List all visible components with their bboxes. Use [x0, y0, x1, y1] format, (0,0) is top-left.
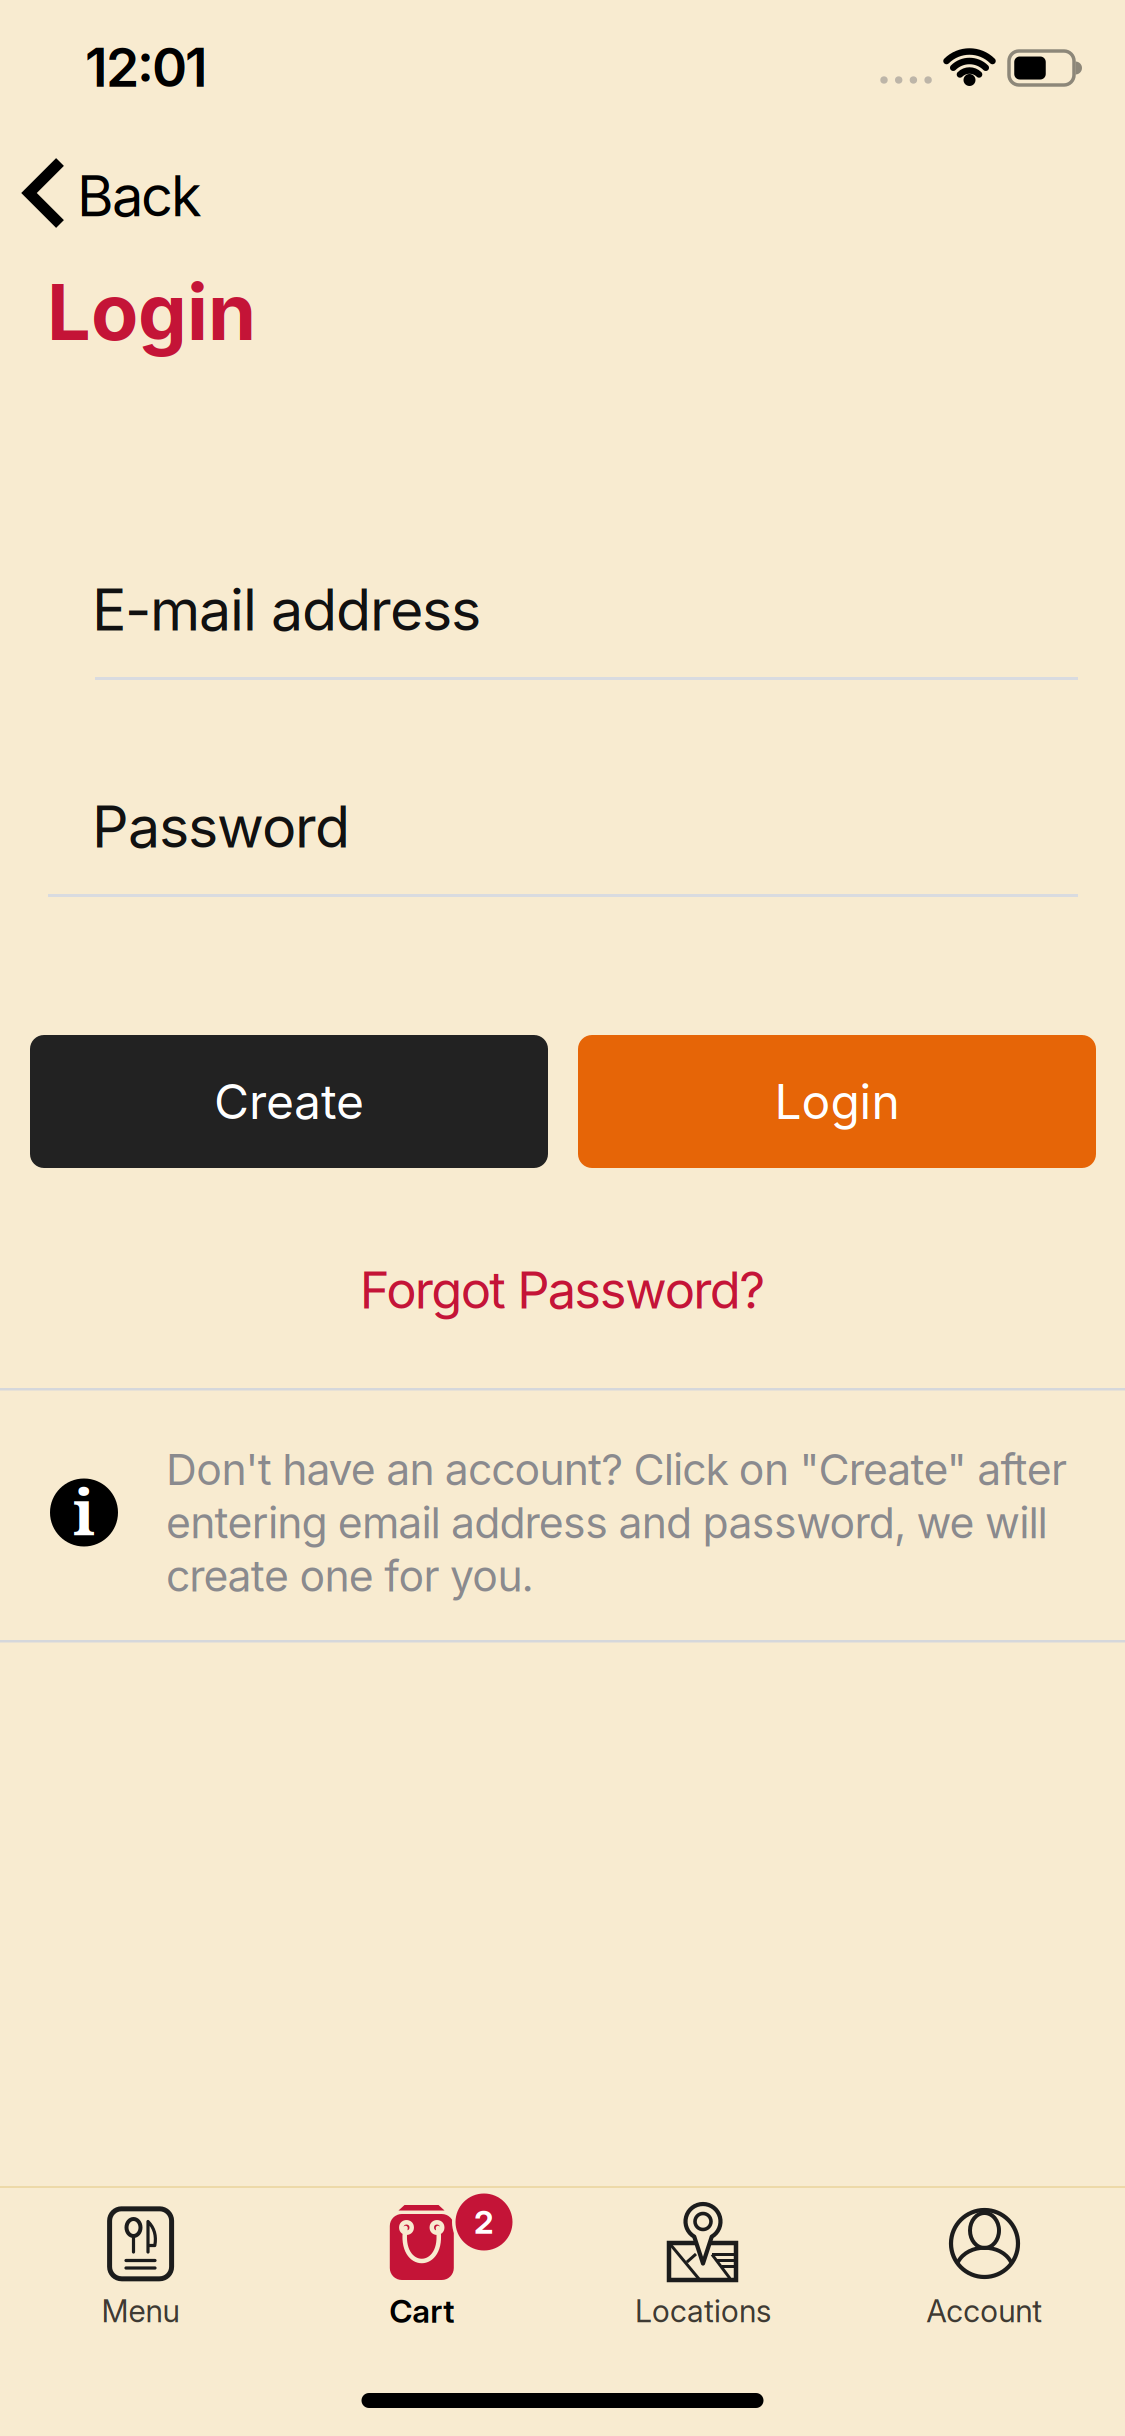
staticText: Login [774, 1072, 899, 1131]
button[interactable]: Back [0, 140, 230, 250]
staticText: Back [77, 162, 202, 230]
staticText: 12:01 [85, 35, 208, 99]
button[interactable]: Locations [562, 2186, 844, 2436]
button[interactable]: Create [30, 1035, 548, 1168]
staticText: Locations [635, 2292, 771, 2329]
staticText: 2 [474, 2203, 494, 2241]
staticText: Login [47, 265, 256, 359]
button[interactable]: Login [578, 1035, 1096, 1168]
staticText: E-mail address [92, 575, 481, 644]
staticText: Cart [389, 2292, 454, 2330]
staticText: i [73, 1468, 95, 1554]
staticText: Menu [102, 2292, 180, 2329]
staticText: Forgot Password? [360, 1259, 765, 1321]
staticText: Create [214, 1072, 364, 1131]
staticText: Don't have an account? Click on "Create"… [166, 1443, 1067, 1602]
button[interactable]: Forgot Password? [340, 1249, 785, 1331]
button[interactable]: Menu [0, 2186, 281, 2436]
button[interactable]: Cart [281, 2186, 562, 2436]
staticText: Password [92, 792, 350, 861]
staticText: Account [926, 2292, 1042, 2329]
button[interactable]: Account [844, 2186, 1125, 2436]
